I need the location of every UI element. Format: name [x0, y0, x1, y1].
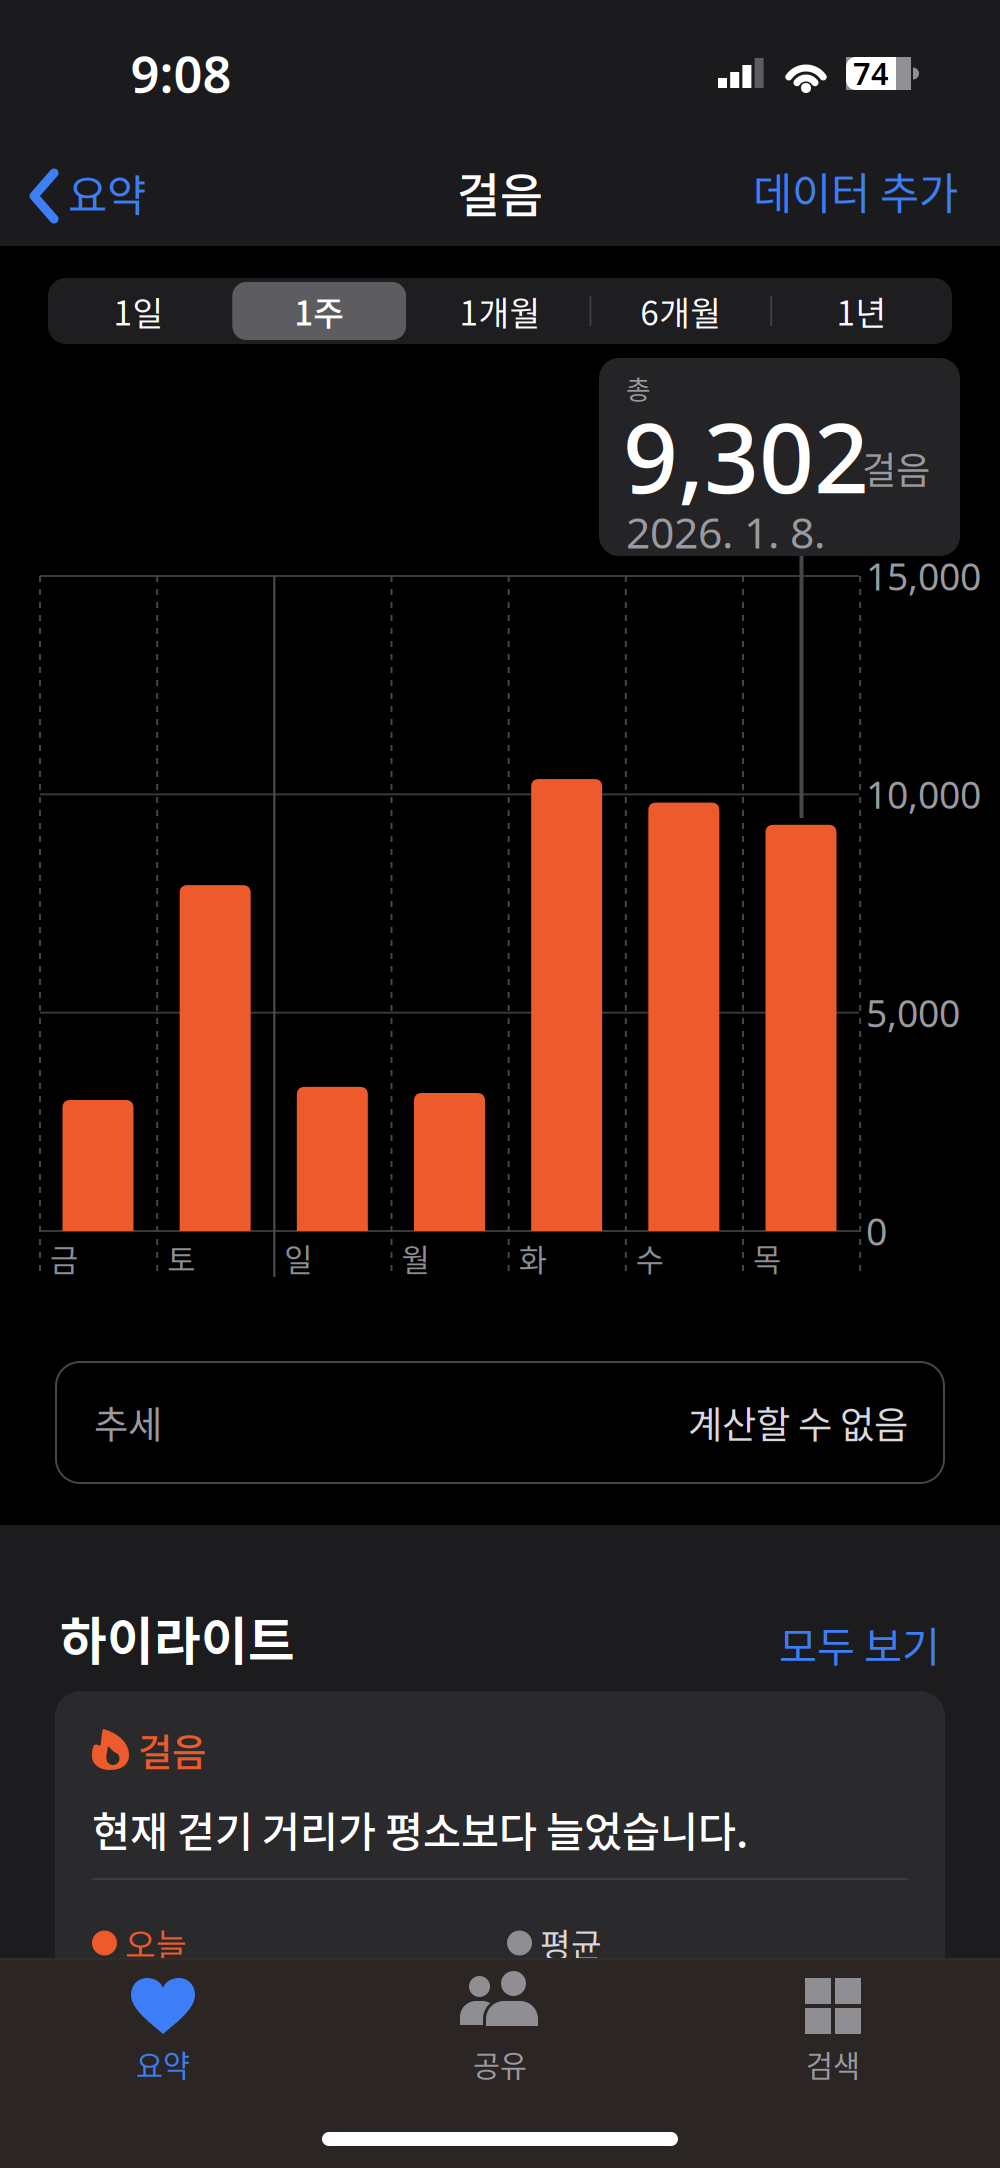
staticText: 하이라이트 — [60, 1601, 295, 1675]
button[interactable]: 1개월 — [410, 278, 590, 344]
staticText: 수 — [636, 1236, 664, 1280]
staticText: 요약 — [68, 162, 146, 224]
button[interactable]: 검색 — [693, 1958, 973, 2088]
staticText: 총 — [626, 369, 651, 407]
button[interactable]: 1년 — [771, 278, 952, 344]
staticText: 9,302 — [623, 391, 869, 521]
staticText: 걸음 — [138, 1723, 206, 1777]
staticText: 목 — [753, 1236, 781, 1280]
staticText: 검색 — [806, 2043, 860, 2085]
button[interactable]: 6개월 — [590, 278, 771, 344]
staticText: 74 — [853, 52, 889, 94]
staticText: 월 — [401, 1236, 429, 1280]
staticText: 계산할 수 없음 — [688, 1395, 908, 1450]
button[interactable]: 공유 — [360, 1958, 640, 2088]
staticText: 걸음 — [457, 158, 543, 226]
staticText: 일 — [284, 1236, 312, 1280]
staticText: 현재 걷기 거리가 평소보다 늘었습니다. — [92, 1799, 748, 1859]
staticText: 5,000 — [866, 987, 960, 1038]
staticText: 요약 — [136, 2043, 190, 2085]
button[interactable]: 요약 — [23, 1958, 303, 2088]
staticText: 15,000 — [866, 551, 981, 601]
staticText: 0 — [866, 1206, 887, 1256]
staticText: 화 — [519, 1236, 547, 1280]
staticText: 2026. 1. 8. — [626, 503, 825, 561]
button[interactable]: 걸음 — [55, 1691, 1000, 2168]
staticText: 1개월 — [459, 287, 540, 335]
staticText: 추세 — [94, 1395, 162, 1450]
button[interactable]: 요약 — [16, 153, 206, 229]
button[interactable]: 1주 — [229, 278, 410, 344]
staticText: 10,000 — [866, 769, 981, 820]
staticText: 모두 보기 — [779, 1614, 940, 1674]
staticText: 1주 — [294, 287, 344, 335]
staticText: 토 — [167, 1236, 195, 1280]
staticText: 공유 — [473, 2043, 527, 2085]
staticText: 데이터 추가 — [753, 160, 958, 222]
button[interactable]: 1일 — [48, 278, 229, 344]
button[interactable]: 모두 보기 — [600, 1612, 940, 1676]
staticText: 평균 — [540, 1919, 602, 1967]
button[interactable]: 데이터 추가 — [598, 153, 958, 229]
staticText: 6개월 — [640, 287, 721, 335]
staticText: 1년 — [837, 287, 887, 335]
staticText: 오늘 — [125, 1919, 187, 1967]
staticText: 걸음 — [862, 441, 930, 495]
button[interactable]: 추세 — [56, 1362, 944, 1483]
staticText: 금 — [50, 1236, 78, 1280]
staticText: 9:08 — [130, 38, 231, 107]
staticText: 1일 — [113, 287, 163, 335]
